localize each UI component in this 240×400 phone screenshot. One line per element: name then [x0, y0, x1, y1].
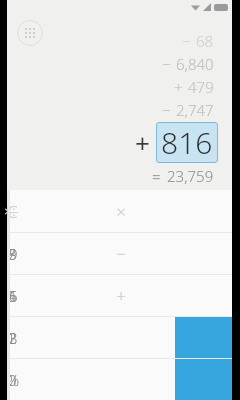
- staticText: +: [135, 125, 150, 160]
- staticText: −: [182, 31, 191, 51]
- staticText: 68: [196, 31, 214, 51]
- button[interactable]: +: [10, 275, 232, 316]
- staticText: −: [162, 100, 171, 120]
- staticText: ×: [116, 200, 126, 223]
- staticText: 23,759: [167, 166, 214, 186]
- staticText: +: [174, 77, 183, 97]
- staticText: 6,840: [176, 54, 214, 74]
- button[interactable]: −: [10, 233, 232, 274]
- staticText: =: [152, 166, 161, 186]
- staticText: 2,747: [176, 100, 214, 120]
- staticText: −: [162, 54, 171, 74]
- button[interactable]: Equals: [175, 316, 232, 400]
- staticText: +: [116, 284, 126, 307]
- staticText: 816: [161, 122, 213, 163]
- staticText: −: [116, 242, 126, 265]
- staticText: 479: [188, 77, 214, 97]
- button[interactable]: Menu: [17, 20, 43, 46]
